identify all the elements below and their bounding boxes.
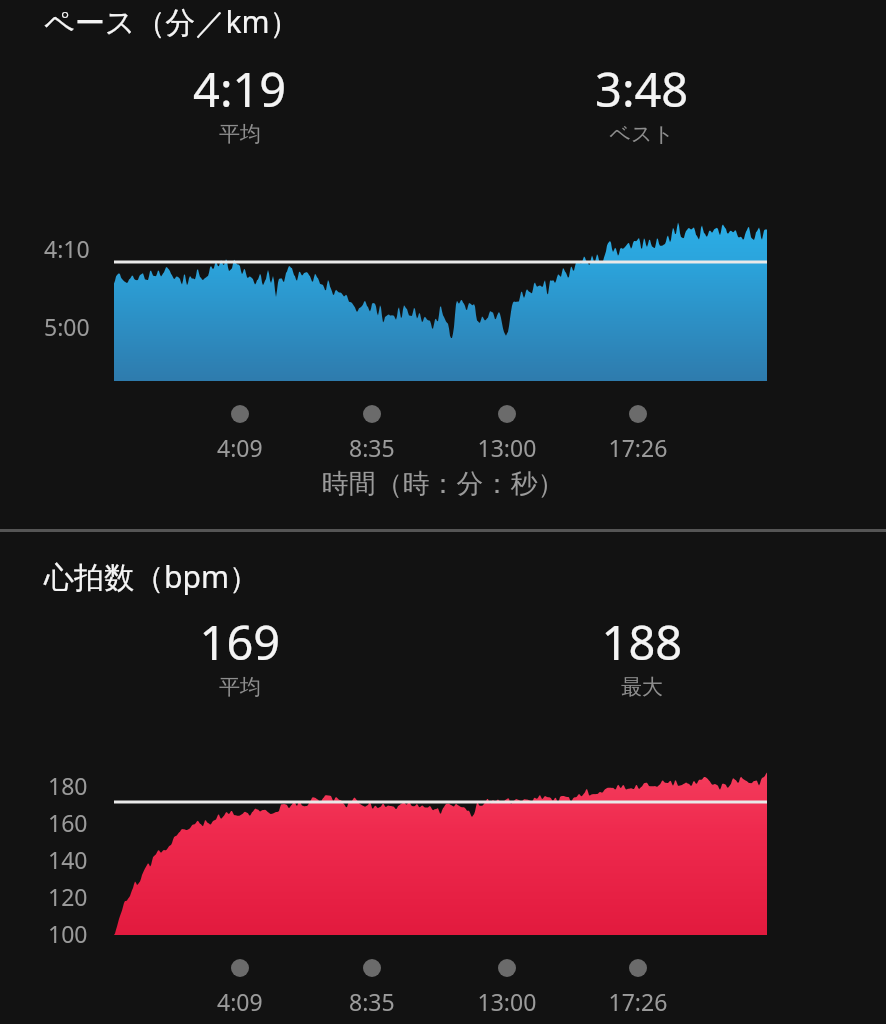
button[interactable]: Pace and heart rate charts [0, 0, 886, 1024]
